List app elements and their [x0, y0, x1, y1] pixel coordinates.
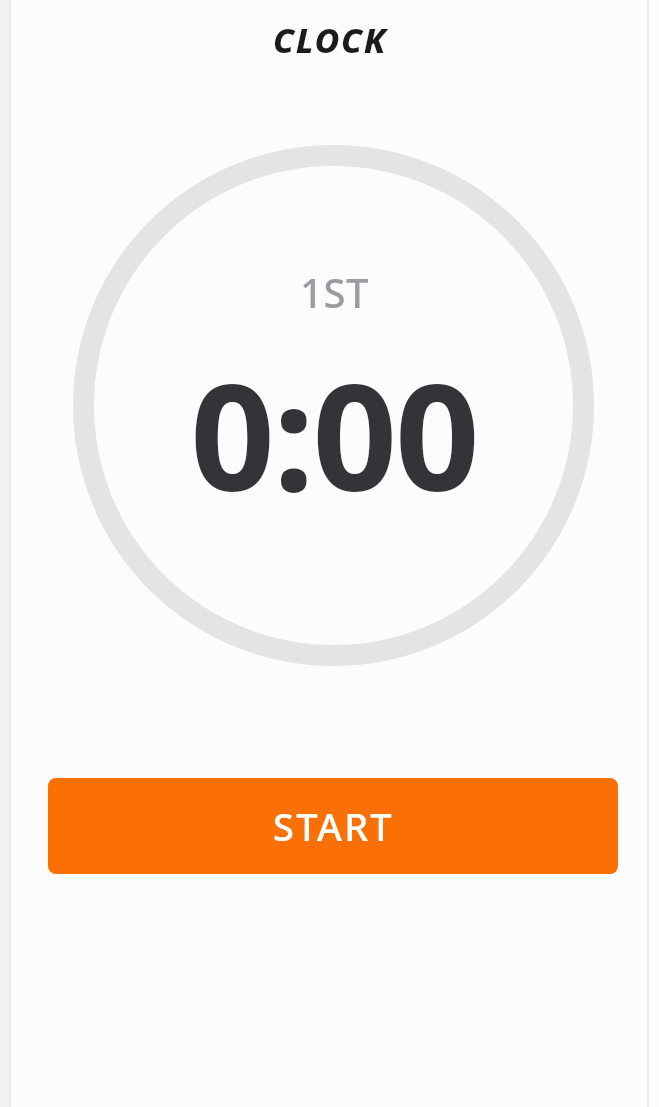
button[interactable]: CLOCK — [0, 16, 659, 64]
staticText: 1ST — [300, 265, 369, 319]
staticText: START — [273, 800, 394, 852]
staticText: CLOCK — [273, 17, 387, 63]
staticText: 0:00 — [190, 333, 478, 535]
button[interactable]: START — [48, 778, 618, 874]
